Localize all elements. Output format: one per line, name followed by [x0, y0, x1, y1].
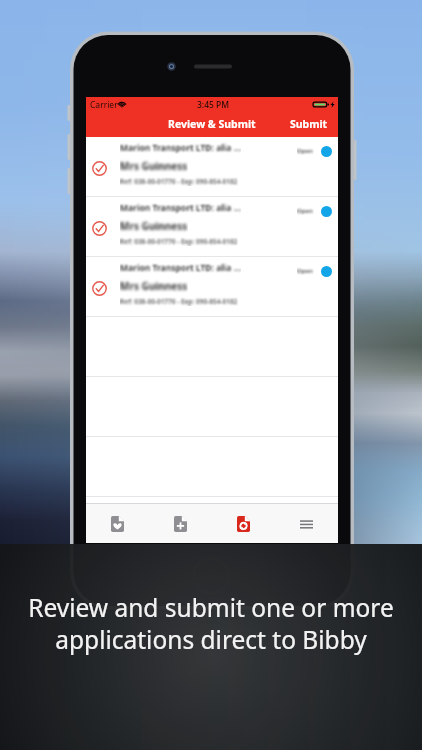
- staticText: Mrs Guinness: [120, 219, 188, 233]
- staticText: Carrier: [90, 99, 118, 111]
- button[interactable]: Favourites: [86, 504, 149, 543]
- staticText: Open: [297, 207, 314, 215]
- button[interactable]: New application: [149, 504, 212, 543]
- staticText: Open: [297, 147, 314, 155]
- staticText: Mrs Guinness: [120, 159, 188, 173]
- button[interactable]: Submit: [280, 113, 338, 135]
- button[interactable]: Marion Transport LTD: alia ...: [86, 137, 338, 197]
- staticText: Ref: 038-00-01770 - Exp: 090-854-0182: [120, 237, 238, 246]
- button[interactable]: Menu: [275, 504, 338, 543]
- staticText: Marion Transport LTD: alia ...: [120, 142, 241, 154]
- staticText: Ref: 038-00-01770 - Exp: 090-854-0182: [120, 297, 238, 306]
- staticText: Submit: [290, 117, 328, 131]
- staticText: Ref: 038-00-01770 - Exp: 090-854-0182: [120, 177, 238, 186]
- staticText: Review & Submit: [168, 117, 256, 131]
- staticText: Marion Transport LTD: alia ...: [120, 202, 241, 214]
- staticText: Mrs Guinness: [120, 279, 188, 293]
- staticText: Marion Transport LTD: alia ...: [120, 262, 241, 274]
- button[interactable]: Marion Transport LTD: alia ...: [86, 197, 338, 257]
- staticText: Open: [297, 267, 314, 275]
- staticText: Review and submit one or more applicatio…: [0, 591, 422, 656]
- staticText: 3:45 PM: [197, 99, 230, 111]
- button[interactable]: Marion Transport LTD: alia ...: [86, 257, 338, 317]
- button[interactable]: Review and submit: [212, 504, 275, 543]
